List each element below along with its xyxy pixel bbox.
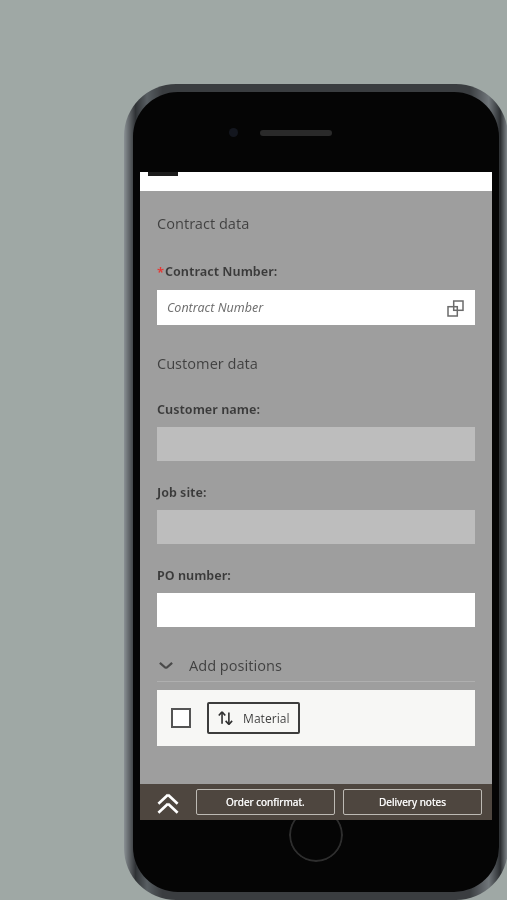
staticText: Job site:	[157, 484, 207, 501]
staticText: Delivery notes	[379, 795, 446, 809]
button[interactable]: Order confirmat.	[196, 789, 335, 815]
staticText: Contract data	[157, 213, 250, 233]
button[interactable]: Expand	[140, 784, 196, 820]
button[interactable]: Select material	[171, 708, 191, 728]
staticText: *	[157, 263, 165, 281]
button[interactable]: Add positions	[157, 655, 475, 675]
staticText: Customer name:	[157, 401, 260, 418]
button[interactable]: Material	[217, 702, 290, 734]
button[interactable]: Delivery notes	[343, 789, 482, 815]
staticText: Add positions	[189, 655, 282, 675]
staticText: Material	[243, 710, 290, 726]
staticText: Contract Number	[167, 299, 264, 316]
staticText: Order confirmat.	[226, 795, 305, 809]
button[interactable]: Contract Number	[157, 290, 475, 325]
staticText: Customer data	[157, 353, 258, 373]
button[interactable]: Select contract	[444, 297, 466, 319]
staticText: Contract Number:	[165, 263, 278, 280]
staticText: PO number:	[157, 567, 231, 584]
